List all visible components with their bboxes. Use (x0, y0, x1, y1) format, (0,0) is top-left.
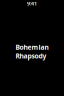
staticText: 9:41 (27, 0, 37, 7)
staticText: Bohemian Rhapsody (15, 43, 48, 60)
